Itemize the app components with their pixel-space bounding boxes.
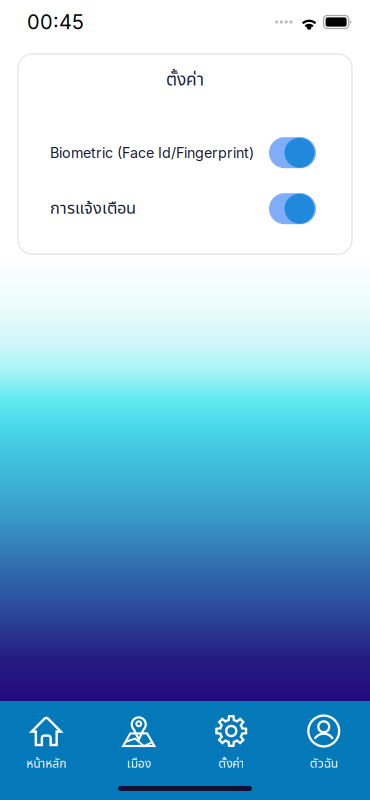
button[interactable]: Biometric (Face Id/Fingerprint) xyxy=(18,137,352,168)
staticText: ตัวฉัน xyxy=(310,755,338,773)
staticText: 00:45 xyxy=(27,10,84,34)
staticText: เมือง xyxy=(127,755,151,773)
button[interactable]: การแจ้งเตือน xyxy=(18,193,352,224)
staticText: การแจ้งเตือน xyxy=(50,196,136,221)
button[interactable]: City xyxy=(92,701,185,800)
staticText: หน้าหลัก xyxy=(26,755,66,773)
staticText: ตั้งค่า xyxy=(166,67,204,93)
staticText: Biometric (Face Id/Fingerprint) xyxy=(50,144,254,161)
button[interactable]: Profile xyxy=(277,701,370,800)
staticText: ตั้งค่า xyxy=(218,755,244,773)
button[interactable]: Settings xyxy=(185,701,277,800)
button[interactable]: Home xyxy=(0,701,92,800)
